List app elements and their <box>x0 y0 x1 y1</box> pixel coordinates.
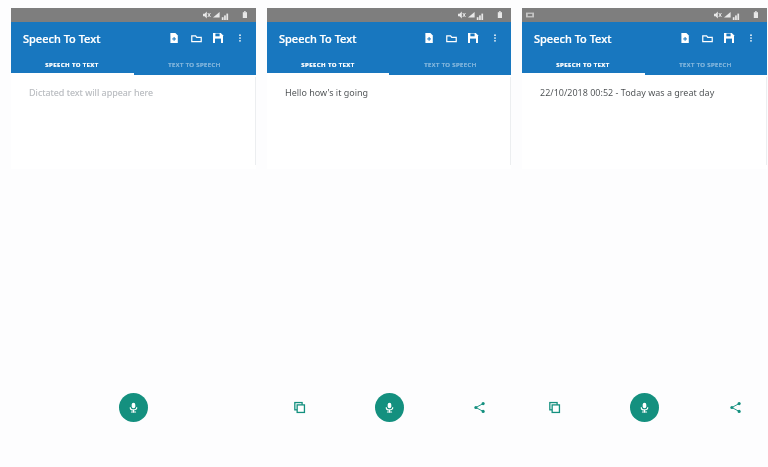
staticText: 22/10/2018 00:52 - Today was a great day <box>540 86 715 98</box>
button[interactable]: Save <box>462 27 484 49</box>
staticText: Hello how's it going <box>285 86 369 98</box>
button[interactable]: Save <box>718 27 740 49</box>
button[interactable]: SPEECH TO TEXT <box>11 54 133 75</box>
button[interactable]: Open folder <box>185 27 207 49</box>
button[interactable]: Save <box>207 27 229 49</box>
staticText: SPEECH TO TEXT <box>301 61 355 69</box>
staticText: Speech To Text <box>279 31 357 46</box>
button[interactable]: SPEECH TO TEXT <box>522 54 644 75</box>
button[interactable]: TEXT TO SPEECH <box>133 54 256 75</box>
button[interactable]: Start dictation <box>119 393 148 422</box>
button[interactable]: More options <box>740 27 762 49</box>
button[interactable]: Open folder <box>696 27 718 49</box>
button[interactable]: More options <box>484 27 506 49</box>
staticText: TEXT TO SPEECH <box>424 61 477 69</box>
button[interactable]: Share <box>463 391 495 423</box>
button[interactable]: TEXT TO SPEECH <box>389 54 511 75</box>
staticText: Dictated text will appear here <box>29 86 154 98</box>
button[interactable]: New file <box>418 27 440 49</box>
staticText: Speech To Text <box>534 31 612 46</box>
button[interactable]: Open folder <box>440 27 462 49</box>
button[interactable]: More options <box>229 27 251 49</box>
button[interactable]: Copy <box>538 391 570 423</box>
button[interactable]: TEXT TO SPEECH <box>644 54 767 75</box>
staticText: SPEECH TO TEXT <box>45 61 99 69</box>
button[interactable]: Share <box>719 391 751 423</box>
button[interactable]: New file <box>163 27 185 49</box>
button[interactable]: SPEECH TO TEXT <box>267 54 389 75</box>
staticText: Speech To Text <box>23 31 101 46</box>
button[interactable]: Copy <box>283 391 315 423</box>
staticText: TEXT TO SPEECH <box>168 61 221 69</box>
staticText: TEXT TO SPEECH <box>679 61 732 69</box>
staticText: SPEECH TO TEXT <box>556 61 610 69</box>
button[interactable]: New file <box>674 27 696 49</box>
button[interactable]: Start dictation <box>375 393 404 422</box>
button[interactable]: Start dictation <box>630 393 659 422</box>
